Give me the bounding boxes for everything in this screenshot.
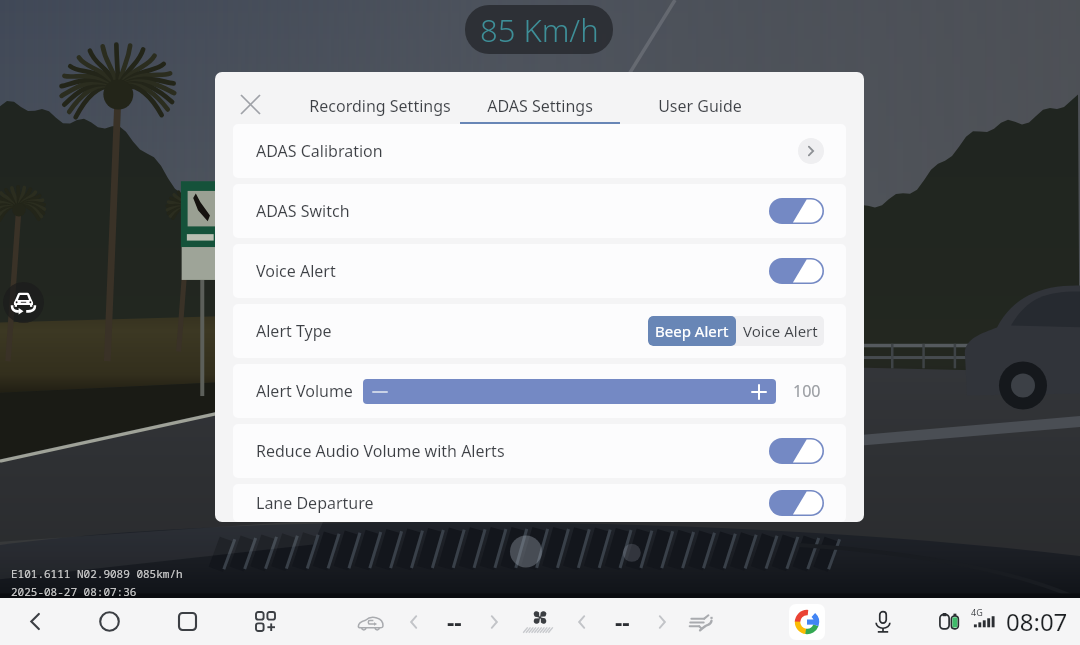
staticText: ADAS Switch (256, 200, 350, 222)
staticText: User Guide (658, 95, 742, 117)
button[interactable]: Voice input (867, 606, 899, 638)
button[interactable]: Decrease driver temperature (399, 607, 429, 637)
button[interactable]: Split screen (226, 598, 304, 645)
button[interactable]: Voice Alert (233, 244, 846, 298)
button[interactable]: Close (230, 84, 270, 124)
button[interactable]: Recording Settings (300, 72, 460, 124)
button[interactable]: Toggle on (769, 258, 824, 284)
button[interactable]: Google Assistant (789, 604, 825, 640)
button[interactable]: Voice Alert (736, 316, 824, 346)
button[interactable]: Home (70, 598, 148, 645)
staticText: ADAS Settings (487, 95, 593, 117)
button[interactable]: Increase passenger temperature (647, 607, 677, 637)
staticText: 2025-08-27 08:07:36 (11, 584, 137, 599)
button[interactable]: -- (429, 598, 479, 645)
staticText: Voice Alert (743, 321, 818, 341)
button[interactable]: Alert Type (233, 304, 846, 358)
button[interactable]: Alert Volume (233, 364, 846, 418)
button[interactable]: -- (597, 598, 647, 645)
button[interactable]: Airflow mode (681, 601, 723, 643)
other: Decrease volume (373, 385, 387, 399)
staticText: 4G (971, 606, 983, 618)
button[interactable]: ADAS Calibration (233, 124, 846, 178)
staticText: Alert Volume (256, 380, 353, 402)
button[interactable]: User Guide (620, 72, 780, 124)
button[interactable]: ADAS Settings (460, 72, 620, 124)
staticText: 85 Km/h (480, 9, 599, 51)
button[interactable]: Decrease passenger temperature (567, 607, 597, 637)
staticText: Recording Settings (309, 95, 451, 117)
button[interactable]: Toggle on (769, 438, 824, 464)
button[interactable]: Fan speed (520, 602, 560, 642)
button[interactable]: Back (0, 598, 70, 645)
staticText: 100 (793, 380, 821, 402)
button[interactable]: Reduce Audio Volume with Alerts (233, 424, 846, 478)
button[interactable]: Toggle on (769, 490, 824, 516)
staticText: Reduce Audio Volume with Alerts (256, 440, 505, 462)
other: Increase volume (752, 385, 766, 399)
button[interactable]: Air recirculation (349, 601, 391, 643)
staticText: -- (615, 606, 630, 637)
staticText: Lane Departure (256, 492, 374, 514)
staticText: E101.6111 N02.9089 085km/h (11, 566, 183, 581)
staticText: ADAS Calibration (256, 140, 383, 162)
button[interactable]: Recent apps (148, 598, 226, 645)
button[interactable]: Decrease volume (363, 379, 776, 404)
button[interactable]: 360 surround view (3, 282, 44, 323)
staticText: Voice Alert (256, 260, 336, 282)
button[interactable]: Beep Alert (648, 316, 736, 346)
button[interactable]: Lane Departure (233, 484, 846, 522)
staticText: -- (447, 606, 462, 637)
button[interactable]: Toggle on (769, 198, 824, 224)
staticText: Beep Alert (655, 321, 729, 341)
button[interactable]: Increase driver temperature (479, 607, 509, 637)
button[interactable]: ADAS Switch (233, 184, 846, 238)
staticText: Alert Type (256, 320, 332, 342)
staticText: 08:07 (1006, 605, 1068, 638)
